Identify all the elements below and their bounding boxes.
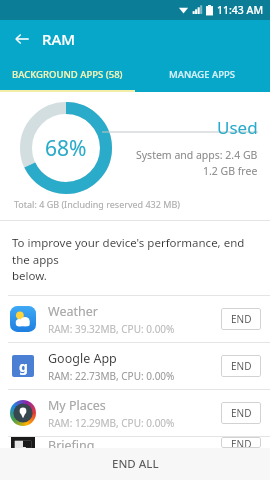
button[interactable]: MANAGE APPS	[135, 58, 270, 90]
staticText: 11:43 AM	[217, 3, 264, 17]
staticText: g	[19, 357, 28, 376]
staticText: Weather	[48, 303, 98, 320]
staticText: 68%	[45, 134, 87, 163]
button[interactable]: Back	[8, 25, 36, 53]
button[interactable]: END ALL	[0, 448, 270, 480]
staticText: RAM: 39.32MB, CPU: 0.00%	[48, 322, 175, 336]
staticText: To improve your device's performance, en…	[12, 235, 260, 283]
staticText: RAM: 22.73MB, CPU: 0.00%	[48, 369, 175, 383]
staticText: END	[231, 312, 252, 326]
button[interactable]: g	[0, 343, 270, 389]
button[interactable]: END	[221, 402, 261, 424]
button[interactable]: My Places	[0, 390, 270, 436]
staticText: END	[231, 406, 252, 420]
staticText: Total: 4 GB (Including reserved 432 MB)	[14, 198, 180, 210]
button[interactable]: END	[221, 437, 261, 448]
button[interactable]: END	[221, 308, 261, 330]
staticText: Used	[217, 116, 258, 139]
staticText: END	[231, 359, 252, 373]
staticText: RAM	[42, 29, 76, 49]
staticText: Google App	[48, 350, 117, 367]
staticText: BACKGROUND APPS (58)	[12, 68, 123, 81]
staticText: RAM: 12.29MB, CPU: 0.00%	[48, 416, 175, 430]
staticText: Briefing	[48, 437, 95, 448]
button[interactable]: END	[221, 355, 261, 377]
button[interactable]: Briefing	[0, 437, 270, 448]
staticText: 1.2 GB free	[203, 164, 258, 178]
staticText: My Places	[48, 397, 106, 414]
button[interactable]: BACKGROUND APPS (58)	[0, 58, 135, 90]
staticText: MANAGE APPS	[169, 68, 236, 81]
button[interactable]: Weather	[0, 296, 270, 342]
staticText: END	[231, 437, 252, 448]
staticText: System and apps: 2.4 GB	[136, 148, 258, 162]
staticText: END ALL	[112, 456, 159, 472]
